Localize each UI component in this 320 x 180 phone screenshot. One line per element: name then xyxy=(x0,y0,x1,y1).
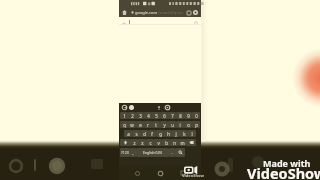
button[interactable]: 4 xyxy=(144,112,152,119)
staticText: google.com xyxy=(135,10,158,15)
button[interactable]: p xyxy=(192,121,200,128)
button[interactable]: ?123 xyxy=(120,148,130,157)
button[interactable]: r xyxy=(144,121,152,128)
button[interactable]: q xyxy=(120,121,128,128)
staticText: m xyxy=(180,140,185,146)
button[interactable]: Search xyxy=(193,20,199,26)
staticText: q xyxy=(123,122,126,128)
staticText: x xyxy=(141,140,144,146)
button[interactable]: English (US) xyxy=(136,148,169,157)
button[interactable]: 0 xyxy=(192,112,200,119)
button[interactable]: Recents xyxy=(178,168,188,178)
staticText: i xyxy=(179,122,181,128)
staticText: n xyxy=(173,140,176,146)
button[interactable] xyxy=(120,139,130,146)
staticText: d xyxy=(143,131,146,137)
button[interactable]: 1 xyxy=(120,112,128,119)
staticText: f xyxy=(151,131,153,137)
button[interactable]: Menu xyxy=(192,9,199,16)
staticText: 3 xyxy=(139,113,142,119)
staticText: 0 xyxy=(195,113,198,119)
button[interactable]: n xyxy=(170,139,178,146)
button[interactable]: 9 xyxy=(184,112,192,119)
staticText: p xyxy=(195,122,198,128)
button[interactable]: u xyxy=(168,121,176,128)
staticText: 7 xyxy=(171,113,174,119)
button[interactable] xyxy=(175,148,185,157)
staticText: VideoShow xyxy=(182,173,204,178)
staticText: u xyxy=(171,122,174,128)
button[interactable] xyxy=(186,139,196,146)
button[interactable]: o xyxy=(184,121,192,128)
staticText: , xyxy=(132,150,134,156)
button[interactable]: k xyxy=(180,130,188,137)
staticText: 1 xyxy=(123,113,126,119)
staticText: k xyxy=(183,131,186,137)
button[interactable]: 5 xyxy=(152,112,160,119)
button[interactable]: d xyxy=(140,130,148,137)
staticText: o xyxy=(187,122,190,128)
staticText: v xyxy=(157,140,160,146)
button[interactable]: y xyxy=(160,121,168,128)
button[interactable]: Voice input xyxy=(155,104,162,111)
button[interactable]: t xyxy=(152,121,160,128)
staticText: . xyxy=(171,150,173,156)
staticText: s xyxy=(135,131,138,137)
button[interactable]: Tabs xyxy=(185,9,192,16)
button[interactable]: h xyxy=(164,130,172,137)
button[interactable]: 6 xyxy=(160,112,168,119)
button[interactable]: m xyxy=(178,139,186,146)
button[interactable]: i xyxy=(176,121,184,128)
staticText: c xyxy=(149,140,152,146)
button[interactable]: Back xyxy=(132,168,142,178)
button[interactable]: Back xyxy=(121,20,127,26)
button[interactable]: 2 xyxy=(128,112,136,119)
staticText: h xyxy=(167,131,170,137)
staticText: a xyxy=(127,131,130,137)
button[interactable]: c xyxy=(146,139,154,146)
button[interactable]: . xyxy=(169,148,175,157)
staticText: y xyxy=(163,122,166,128)
button[interactable]: w xyxy=(128,121,136,128)
button[interactable]: g xyxy=(156,130,164,137)
staticText: w xyxy=(130,122,134,128)
button[interactable]: Google search xyxy=(121,104,128,111)
button[interactable]: l xyxy=(188,130,196,137)
staticText: 4 xyxy=(147,113,150,119)
staticText: j xyxy=(175,131,177,137)
button[interactable]: Home xyxy=(155,168,165,178)
button[interactable]: Settings xyxy=(164,104,171,111)
staticText: VideoShow xyxy=(247,163,320,180)
button[interactable]: , xyxy=(130,148,136,157)
button[interactable]: 7 xyxy=(168,112,176,119)
button[interactable]: a xyxy=(124,130,132,137)
button[interactable]: Home xyxy=(121,9,128,16)
button[interactable]: 3 xyxy=(136,112,144,119)
staticText: 8 xyxy=(179,113,182,119)
button[interactable]: z xyxy=(130,139,138,146)
staticText: 5 xyxy=(155,113,158,119)
staticText: l xyxy=(191,131,193,137)
staticText: t xyxy=(155,122,157,128)
button[interactable]: Emoji xyxy=(128,104,135,111)
staticText: g xyxy=(159,131,162,137)
button[interactable]: b xyxy=(162,139,170,146)
button[interactable]: x xyxy=(138,139,146,146)
button[interactable]: f xyxy=(148,130,156,137)
staticText: 6 xyxy=(163,113,166,119)
staticText: English (US) xyxy=(143,150,162,155)
staticText: ?123 xyxy=(121,150,129,155)
button[interactable]: 8 xyxy=(176,112,184,119)
staticText: z xyxy=(133,140,136,146)
staticText: b xyxy=(165,140,168,146)
staticText: 2 xyxy=(131,113,134,119)
button[interactable]: j xyxy=(172,130,180,137)
staticText: r xyxy=(147,122,149,128)
button[interactable]: e xyxy=(136,121,144,128)
staticText: /search?q=co xyxy=(158,10,183,15)
button[interactable]: v xyxy=(154,139,162,146)
button[interactable]: s xyxy=(132,130,140,137)
staticText: Made with xyxy=(263,157,311,169)
staticText: 9 xyxy=(187,113,190,119)
staticText: e xyxy=(139,122,142,128)
